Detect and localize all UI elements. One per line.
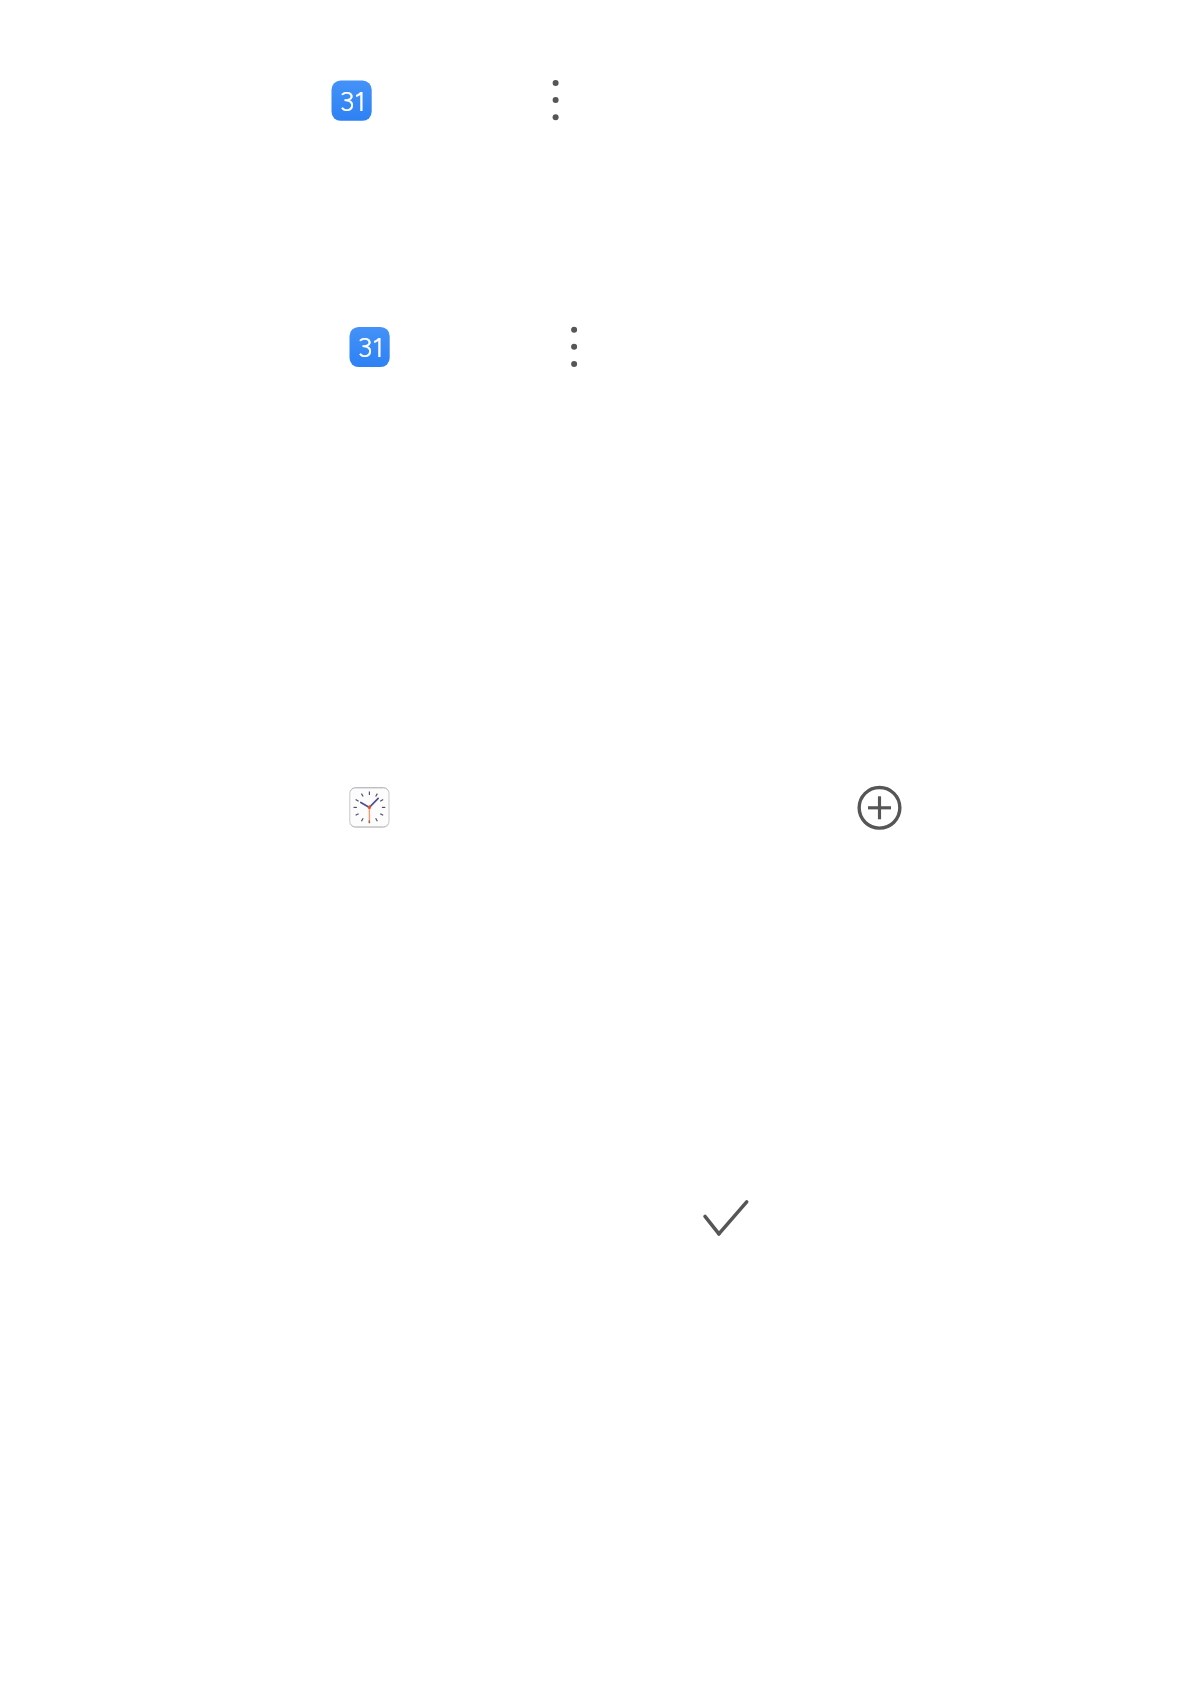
button[interactable]: Done	[699, 1198, 751, 1240]
button[interactable]: More options	[542, 72, 568, 128]
staticText: 31	[339, 85, 366, 118]
staticText: 31	[357, 331, 384, 364]
button[interactable]: 31	[331, 80, 373, 122]
button[interactable]: Add	[855, 783, 903, 831]
button[interactable]: More options	[561, 318, 587, 374]
button[interactable]: 31	[349, 326, 391, 368]
button[interactable]: Clock	[349, 787, 391, 829]
